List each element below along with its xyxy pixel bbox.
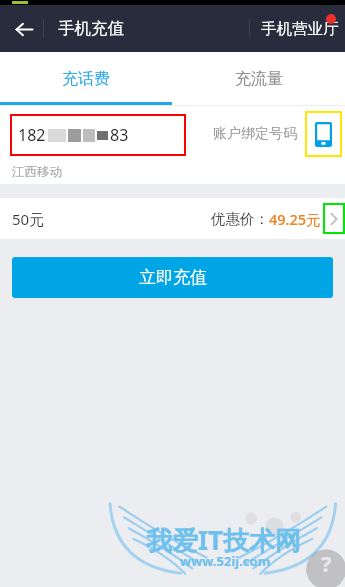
staticText: 立即充值 bbox=[139, 267, 207, 288]
button[interactable]: 手机营业厅 bbox=[251, 5, 345, 52]
staticText: 充流量 bbox=[235, 69, 283, 89]
staticText: 83 bbox=[110, 124, 129, 146]
staticText: 江西移动 bbox=[12, 164, 62, 180]
button[interactable]: 充话费 bbox=[0, 52, 172, 105]
button[interactable]: 选择号码 bbox=[305, 111, 342, 157]
staticText: www.52ij.com bbox=[180, 552, 271, 570]
staticText: 充话费 bbox=[62, 69, 110, 89]
button[interactable]: Back bbox=[6, 11, 42, 47]
staticText: 我爱IT技术网 bbox=[146, 522, 302, 558]
staticText: 手机营业厅 bbox=[261, 19, 339, 39]
staticText: 优惠价： bbox=[211, 210, 269, 228]
button[interactable]: 账户绑定号码 bbox=[213, 125, 297, 143]
button[interactable]: 更多面额 bbox=[323, 203, 345, 234]
button[interactable]: 182 bbox=[10, 114, 186, 156]
staticText: 49.25元 bbox=[269, 209, 321, 229]
staticText: 50元 bbox=[12, 209, 45, 229]
button[interactable]: 充流量 bbox=[172, 52, 345, 105]
button[interactable]: 50元 bbox=[0, 198, 345, 239]
staticText: 182 bbox=[18, 124, 46, 146]
staticText: ? bbox=[321, 548, 332, 578]
staticText: 手机充值 bbox=[58, 18, 124, 39]
button[interactable]: 立即充值 bbox=[12, 257, 333, 298]
